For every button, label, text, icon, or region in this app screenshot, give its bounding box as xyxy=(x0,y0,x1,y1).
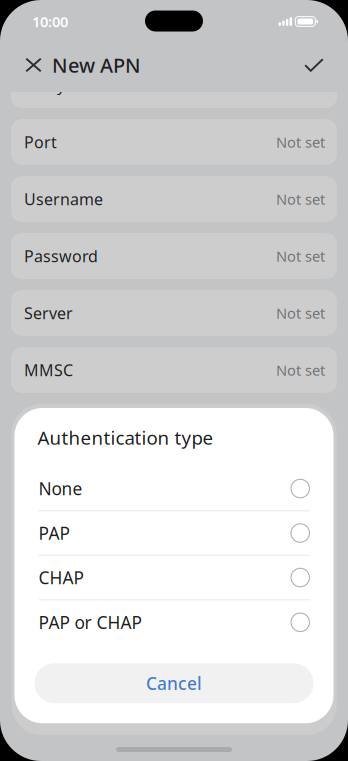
staticText: CHAP xyxy=(38,566,83,589)
staticText: Not set xyxy=(276,132,325,152)
staticText: Not set xyxy=(276,189,325,209)
button[interactable]: Username xyxy=(11,176,337,222)
staticText: PAP xyxy=(38,521,69,544)
button[interactable]: MMSC xyxy=(11,347,337,393)
staticText: Port xyxy=(24,131,57,153)
button[interactable]: Close xyxy=(13,44,54,86)
button[interactable]: Save xyxy=(293,44,335,86)
staticText: Not set xyxy=(276,360,325,380)
button[interactable]: Port xyxy=(11,119,337,165)
staticText: Not set xyxy=(276,303,325,323)
button[interactable]: Password xyxy=(11,233,337,279)
button[interactable]: Cancel xyxy=(34,663,313,703)
staticText: Server xyxy=(24,302,73,324)
staticText: Proxy xyxy=(24,74,65,96)
button[interactable]: CHAP xyxy=(14,556,333,600)
button[interactable]: Proxy xyxy=(11,62,337,108)
staticText: Cancel xyxy=(146,672,202,695)
staticText: MMSC xyxy=(24,359,73,381)
staticText: Not set xyxy=(276,246,325,266)
button[interactable]: Server xyxy=(11,290,337,336)
staticText: New APN xyxy=(52,52,141,78)
button[interactable]: None xyxy=(14,467,333,511)
button[interactable]: PAP xyxy=(14,511,333,556)
staticText: PAP or CHAP xyxy=(38,611,141,634)
staticText: Password xyxy=(24,245,98,267)
staticText: 10:00 xyxy=(32,12,68,31)
staticText: None xyxy=(38,477,82,500)
staticText: Authentication type xyxy=(37,425,213,450)
staticText: Username xyxy=(24,188,103,210)
button[interactable]: PAP or CHAP xyxy=(14,600,333,644)
staticText: Not set xyxy=(276,75,325,95)
